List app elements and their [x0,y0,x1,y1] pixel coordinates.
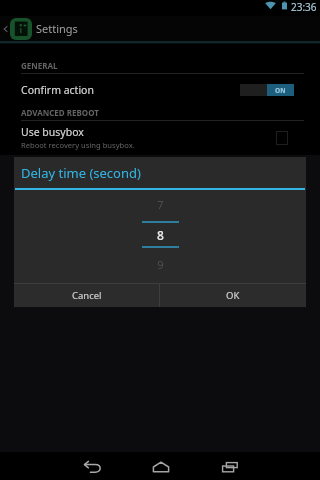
staticText: GENERAL [21,60,58,71]
staticText: Delay time (second) [21,164,141,182]
staticText: ON [275,86,286,95]
staticText: Use busybox [21,125,84,139]
button[interactable]: Confirm action [0,74,320,106]
staticText: 9 [157,257,164,272]
staticText: 7 [157,197,164,212]
button[interactable]: Home [126,452,195,480]
staticText: 23:36 [291,0,317,14]
button[interactable]: Use busybox checkbox [273,129,291,147]
button[interactable]: Delay seconds picker [130,197,190,277]
staticText: Cancel [72,289,102,302]
staticText: 8 [157,227,164,243]
button[interactable]: Settings [0,16,320,41]
button[interactable]: Confirm action toggle [240,84,294,96]
button[interactable]: Recent apps [195,452,264,480]
staticText: Confirm action [21,83,94,97]
button[interactable]: OK [160,284,306,307]
staticText: OK [226,289,240,302]
button[interactable]: Use busybox [0,121,320,154]
button[interactable]: Cancel [14,284,159,307]
staticText: Reboot recovery using busybox. [21,140,135,150]
staticText: ADVANCED REBOOT [21,107,99,118]
button[interactable]: Back [57,452,126,480]
staticText: Settings [36,21,78,36]
